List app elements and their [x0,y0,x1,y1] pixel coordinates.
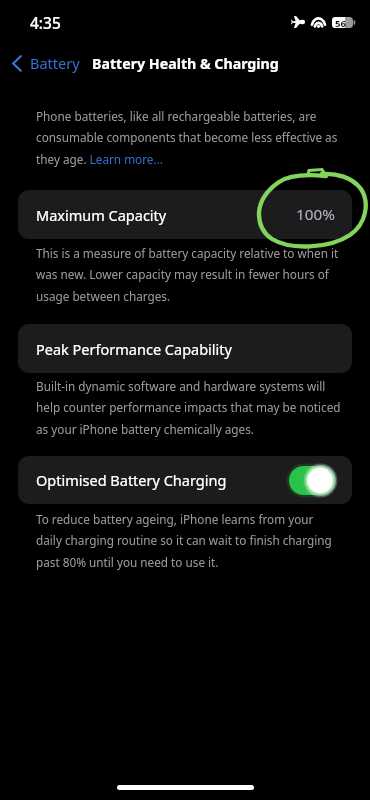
staticText: Battery Health & Charging [92,54,279,73]
staticText: Phone batteries, like all rechargeable b… [36,108,341,167]
staticText: Built-in dynamic software and hardware s… [36,378,341,437]
staticText: Battery [30,53,80,73]
staticText: To reduce battery ageing, iPhone learns … [36,511,341,570]
other: Battery 56 percent [332,17,356,28]
staticText: 100% [296,204,335,225]
staticText: Optimised Battery Charging [36,470,227,490]
button[interactable]: Maximum Capacity [18,190,352,239]
staticText: This is a measure of battery capacity re… [36,245,341,304]
button[interactable]: Optimised Battery Charging toggle [289,466,335,495]
button[interactable]: Optimised Battery Charging [18,456,352,504]
other: Aeroplane mode [291,16,305,28]
staticText: Maximum Capacity [36,205,167,225]
other: Wi-Fi [311,17,326,28]
button[interactable]: Peak Performance Capability [18,324,352,373]
staticText: Peak Performance Capability [36,339,232,359]
staticText: 4:35 [30,12,61,33]
button[interactable]: Battery [8,48,84,78]
staticText: 56 [335,17,346,28]
other: Highlight around 100 percent [0,0,370,800]
